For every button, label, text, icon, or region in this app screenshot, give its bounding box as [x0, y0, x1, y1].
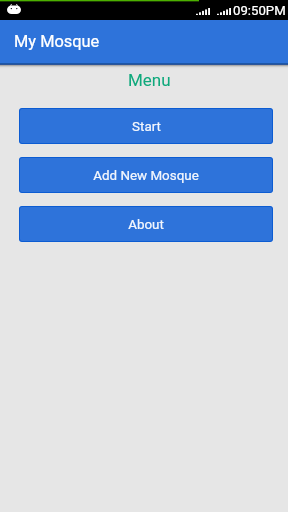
staticText: Add New Mosque	[93, 168, 199, 184]
other: Android notification	[7, 4, 21, 14]
button[interactable]: Add New Mosque	[19, 157, 273, 193]
button[interactable]: About	[19, 206, 273, 242]
staticText: My Mosque	[14, 32, 100, 51]
button[interactable]: Start	[19, 108, 273, 144]
staticText: Menu	[128, 70, 171, 90]
staticText: Start	[132, 119, 161, 135]
staticText: About	[128, 217, 164, 233]
staticText: 09:50PM	[233, 3, 286, 18]
